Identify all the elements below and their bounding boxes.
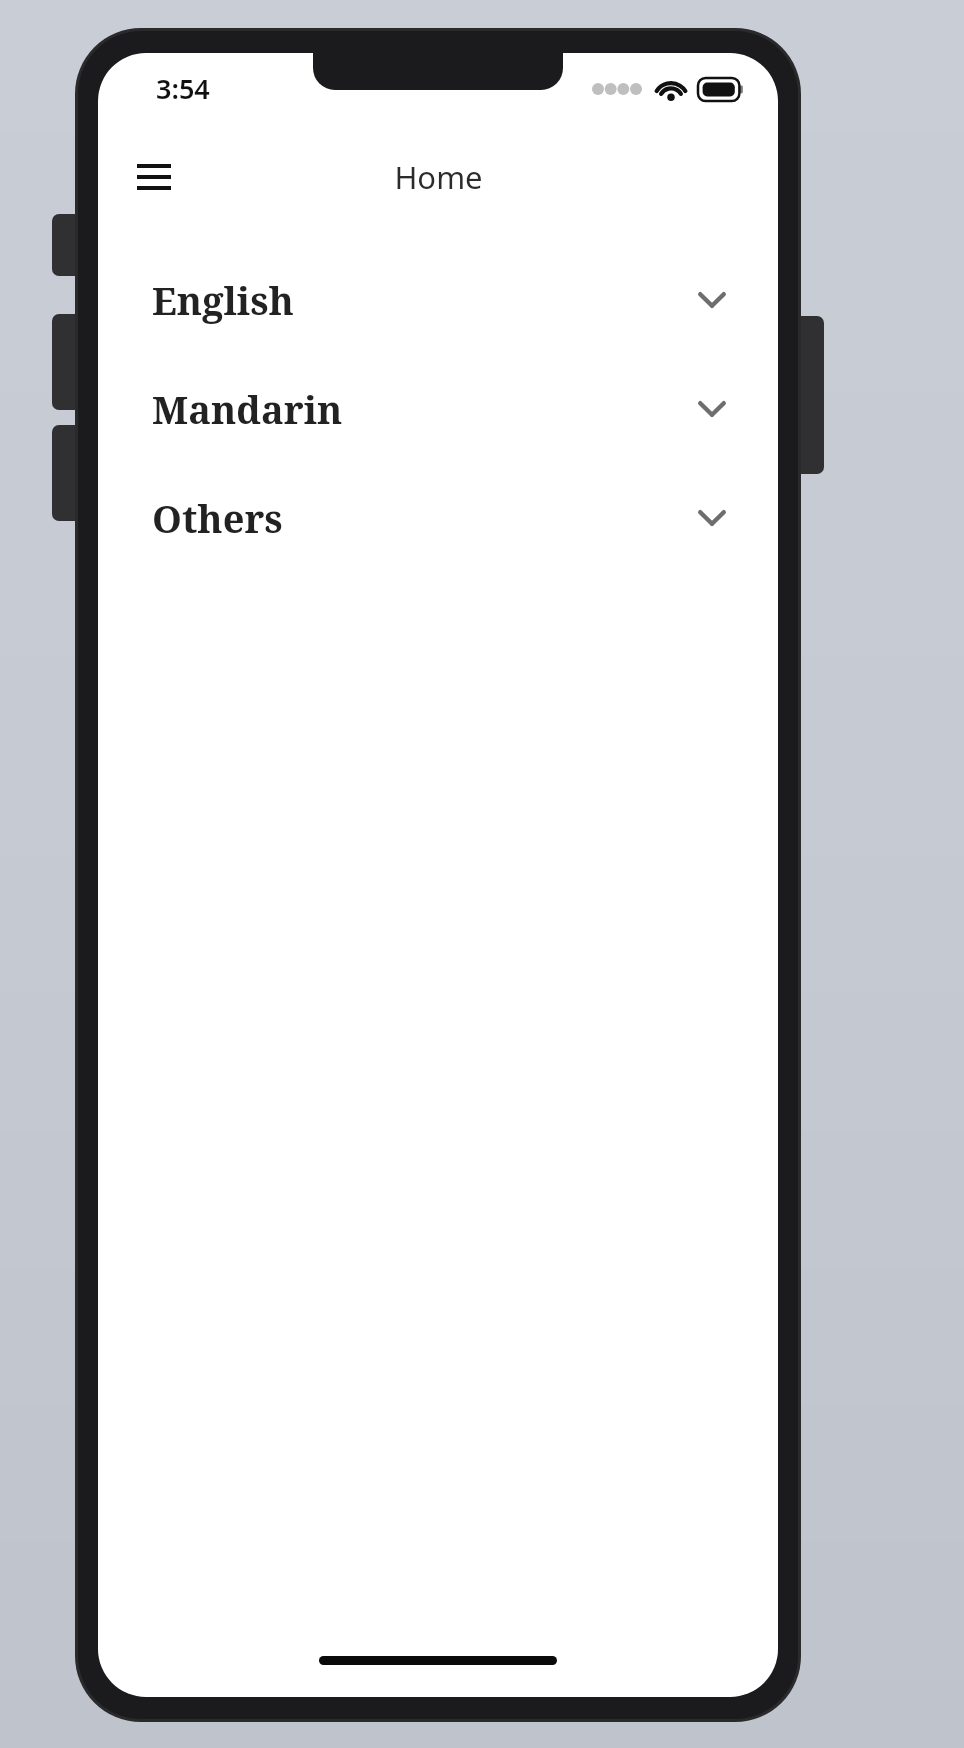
staticText: Others [152, 492, 283, 544]
button[interactable]: Mandarin [98, 380, 778, 438]
button[interactable]: English [98, 271, 778, 329]
staticText: Home [394, 156, 483, 198]
staticText: Mandarin [152, 383, 343, 435]
button[interactable]: Open navigation menu [120, 143, 188, 211]
other: Expand English [690, 278, 734, 322]
other: Expand Others [690, 496, 734, 540]
button[interactable]: Others [98, 489, 778, 547]
other: Expand Mandarin [690, 387, 734, 431]
staticText: English [152, 274, 294, 326]
staticText: 3:54 [156, 70, 210, 107]
